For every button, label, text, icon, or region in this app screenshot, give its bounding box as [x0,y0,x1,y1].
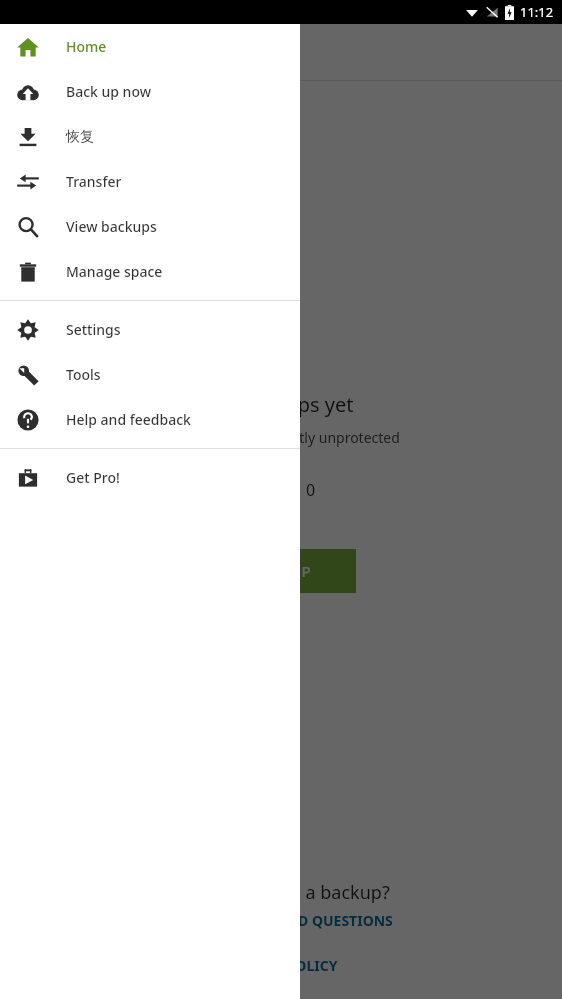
button[interactable]: Tools [0,352,300,397]
button[interactable]: Settings [0,307,300,352]
staticText: Need help with a backup? [173,880,390,905]
button[interactable]: 恢复 [0,114,300,159]
button[interactable]: Get Pro! [0,455,300,500]
staticText: Get Pro! [66,468,120,487]
staticText: Home [66,37,107,56]
button[interactable]: Transfer [0,159,300,204]
staticText: Manage space [66,262,163,281]
staticText: 0 [306,479,316,501]
staticText: Back up now [66,82,151,101]
button[interactable]: Manage space [0,249,300,294]
button[interactable]: Back up now [0,69,300,114]
button[interactable]: Help and feedback [0,397,300,442]
staticText: BACKUP [252,561,311,581]
button[interactable]: Home [0,24,300,69]
staticText: 11:12 [520,3,554,21]
button[interactable]: View backups [0,204,300,249]
staticText: Your apps are currently unprotected [162,428,400,447]
staticText: View backups [66,217,157,236]
staticText: Settings [66,320,121,339]
staticText: Tools [66,365,101,384]
button[interactable]: BACKUP [206,549,356,593]
staticText: No backups yet [209,391,354,418]
staticText: PRIVACY POLICY [224,956,338,975]
staticText: 恢复 [66,128,94,146]
staticText: Help and feedback [66,410,191,429]
staticText: Transfer [66,172,122,191]
staticText: FREQUENTLY ASKED QUESTIONS [170,911,393,930]
